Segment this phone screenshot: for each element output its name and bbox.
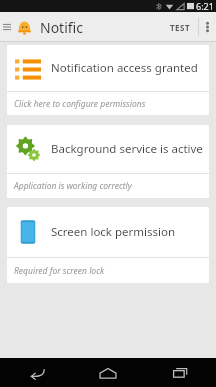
button[interactable]: Recent apps xyxy=(144,358,216,387)
button[interactable]: Screen lock permission granted xyxy=(7,207,209,283)
button[interactable]: Home xyxy=(72,358,144,387)
button[interactable]: TEST xyxy=(163,12,198,42)
staticText: Click here to configure permissions xyxy=(14,98,146,110)
staticText: Notification access granted xyxy=(51,60,198,76)
staticText: 6:21 xyxy=(196,0,214,12)
staticText: TEST xyxy=(170,22,191,33)
staticText: Notific xyxy=(40,18,83,37)
button[interactable]: More options xyxy=(199,12,216,42)
staticText: Required for screen lock xyxy=(14,265,105,277)
staticText: Screen lock permission granted xyxy=(51,224,209,240)
button[interactable]: Notification access granted xyxy=(7,45,209,115)
button[interactable]: Background service is active xyxy=(7,125,209,198)
button[interactable]: Back xyxy=(0,358,72,387)
button[interactable]: Open navigation drawer xyxy=(0,12,14,42)
staticText: Application is working correctly xyxy=(14,180,132,192)
staticText: Background service is active xyxy=(51,141,203,157)
